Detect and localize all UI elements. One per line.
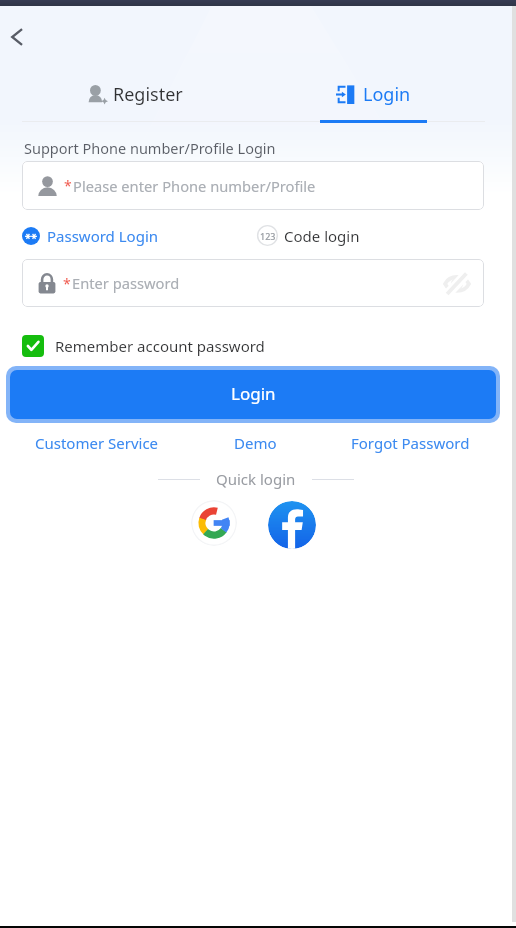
- button[interactable]: Sign in with Facebook: [268, 501, 316, 549]
- button[interactable]: Register: [22, 68, 253, 120]
- staticText: Register: [113, 82, 183, 107]
- button[interactable]: Back: [0, 14, 44, 60]
- staticText: 123: [260, 230, 276, 242]
- button[interactable]: Sign in with Google: [191, 500, 237, 546]
- button[interactable]: 123: [257, 225, 360, 246]
- staticText: Enter password: [72, 273, 180, 293]
- button[interactable]: *: [22, 259, 484, 307]
- staticText: Code login: [284, 226, 360, 246]
- staticText: Password Login: [47, 226, 159, 246]
- button[interactable]: Login: [10, 370, 496, 419]
- button[interactable]: *: [22, 161, 484, 210]
- staticText: Login: [231, 382, 276, 405]
- button[interactable]: Password Login: [22, 226, 159, 246]
- button[interactable]: Remember account password: [22, 335, 265, 357]
- staticText: *: [63, 274, 71, 293]
- button[interactable]: Customer Service: [35, 433, 159, 453]
- staticText: Quick login: [216, 469, 296, 489]
- button[interactable]: Login: [253, 68, 485, 120]
- staticText: Support Phone number/Profile Login: [24, 138, 276, 158]
- button[interactable]: Forgot Password: [351, 433, 470, 453]
- staticText: Login: [363, 82, 411, 107]
- button[interactable]: Demo: [234, 433, 277, 453]
- staticText: Please enter Phone number/Profile: [73, 176, 316, 196]
- staticText: *: [64, 176, 72, 195]
- staticText: Remember account password: [55, 336, 265, 356]
